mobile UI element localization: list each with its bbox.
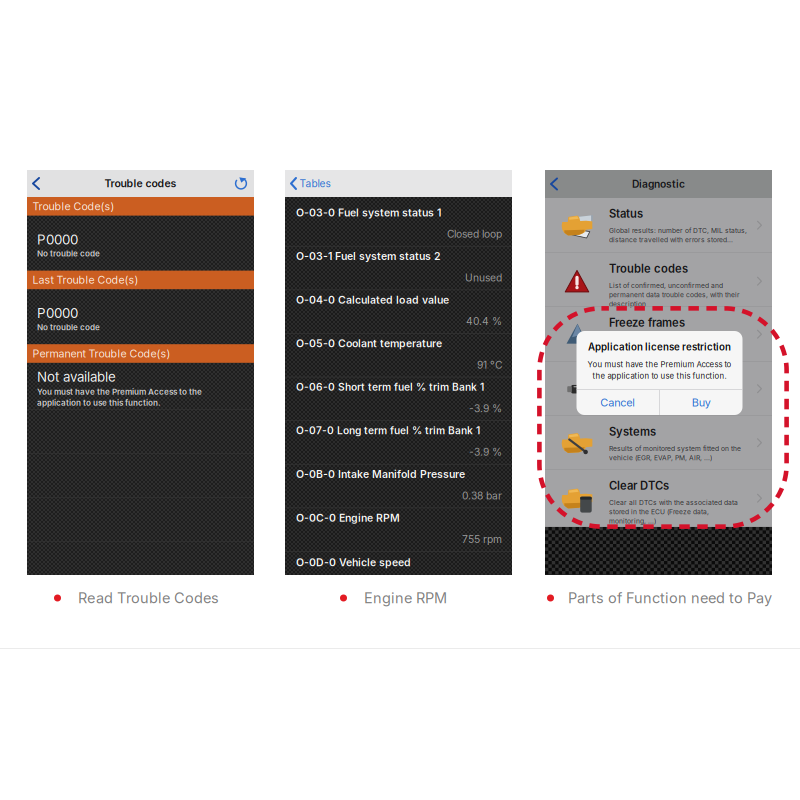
- staticText: Clear DTCs: [609, 479, 669, 493]
- staticText: 0.38 bar: [462, 489, 502, 502]
- staticText: Trouble codes: [609, 262, 688, 276]
- staticText: Results of monitored system fitted on th…: [609, 445, 741, 453]
- staticText: Diagnostic: [632, 178, 685, 190]
- staticText: O-0B-0 Intake Manifold Pressure: [296, 468, 465, 481]
- staticText: O-06-0 Short term fuel % trim Bank 1: [296, 381, 484, 393]
- staticText: the application to use this function.: [592, 371, 726, 381]
- staticText: application to use this function.: [37, 398, 161, 408]
- staticText: distance travelled with errors stored...: [609, 236, 733, 244]
- staticText: Engine RPM: [364, 589, 447, 607]
- staticText: O-0C-0 Engine RPM: [296, 511, 400, 524]
- staticText: Status: [609, 207, 643, 221]
- staticText: Systems: [609, 425, 656, 439]
- button[interactable]: Sensor tests: [545, 362, 772, 416]
- staticText: No trouble code: [37, 322, 100, 332]
- button[interactable]: Clear DTCs: [545, 470, 772, 527]
- staticText: description: [609, 300, 646, 308]
- button[interactable]: Freeze frames: [545, 307, 772, 362]
- staticText: O-05-0 Coolant temperature: [296, 337, 442, 350]
- staticText: -3.9 %: [469, 446, 502, 458]
- staticText: 91 °C: [477, 359, 502, 371]
- staticText: Clear all DTCs with the associated data: [609, 499, 738, 507]
- staticText: 755 rpm: [462, 533, 502, 545]
- button[interactable]: Cancel: [576, 390, 659, 415]
- staticText: You must have the Premium Access to: [587, 360, 731, 369]
- staticText: Cancel: [600, 396, 635, 409]
- staticText: List of confirmed, unconfirmed and: [609, 282, 723, 290]
- staticText: 40.4 %: [466, 315, 502, 327]
- button[interactable]: Systems: [545, 416, 772, 470]
- staticText: You must have the Premium Access to the: [37, 387, 202, 397]
- staticText: O-04-0 Calculated load value: [296, 293, 449, 306]
- staticText: Trouble Code(s): [32, 200, 114, 213]
- staticText: stored in the ECU (Freeze data,: [609, 508, 709, 516]
- staticText: O-07-0 Long term fuel % trim Bank 1: [296, 424, 480, 437]
- button[interactable]: Refresh: [226, 170, 254, 196]
- button[interactable]: Buy: [660, 390, 742, 415]
- button[interactable]: Tables: [285, 170, 336, 196]
- staticText: permanent data trouble codes, with their: [609, 291, 740, 299]
- staticText: Read Trouble Codes: [78, 589, 219, 607]
- staticText: O-03-0 Fuel system status 1: [296, 206, 441, 219]
- staticText: Closed loop: [447, 228, 502, 240]
- staticText: Tables: [299, 177, 330, 190]
- button[interactable]: Trouble codes: [545, 253, 772, 307]
- staticText: Not available: [37, 369, 116, 385]
- staticText: Global results: number of DTC, MIL statu…: [609, 227, 747, 235]
- staticText: P0000: [37, 305, 78, 321]
- staticText: Data recorded by the ECU at the moment: [609, 336, 740, 344]
- staticText: Sensor tests: [609, 371, 677, 385]
- staticText: Permanent Trouble Code(s): [32, 347, 170, 360]
- staticText: Results of the on-board monitoring tests: [609, 391, 739, 399]
- button[interactable]: Status: [545, 198, 772, 253]
- staticText: Unused: [465, 271, 502, 284]
- button[interactable]: Back: [545, 170, 573, 198]
- staticText: Last Trouble Code(s): [32, 273, 138, 286]
- staticText: Freeze frames: [609, 316, 685, 330]
- button[interactable]: Back: [27, 170, 55, 196]
- staticText: Buy: [692, 396, 711, 409]
- staticText: vehicle (EGR, EVAP, PM, AIR, ...): [609, 454, 712, 462]
- staticText: O-03-1 Fuel system status 2: [296, 250, 441, 263]
- staticText: Parts of Function need to Pay: [568, 589, 772, 607]
- staticText: Trouble codes: [104, 177, 176, 190]
- staticText: P0000: [37, 232, 78, 248]
- staticText: -3.9 %: [469, 402, 502, 415]
- staticText: monitoring, ...): [609, 517, 656, 525]
- staticText: the fault appeared: [609, 345, 667, 353]
- staticText: O-0D-0 Vehicle speed: [296, 556, 411, 569]
- staticText: for the oxygen sensors: [609, 400, 685, 408]
- staticText: No trouble code: [37, 249, 100, 258]
- staticText: Application license restriction: [588, 341, 731, 353]
